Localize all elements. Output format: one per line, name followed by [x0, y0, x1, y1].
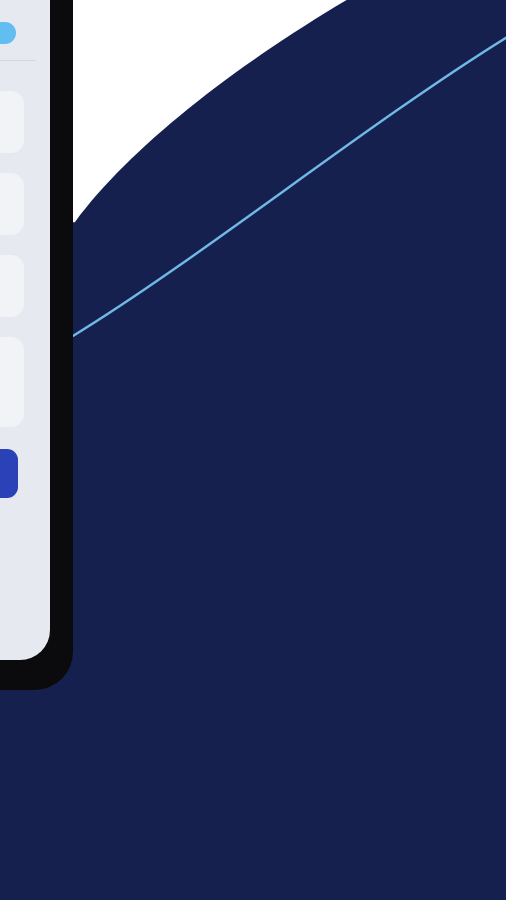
button[interactable]: ato — [0, 449, 18, 498]
button[interactable]: 22 — [0, 22, 16, 44]
